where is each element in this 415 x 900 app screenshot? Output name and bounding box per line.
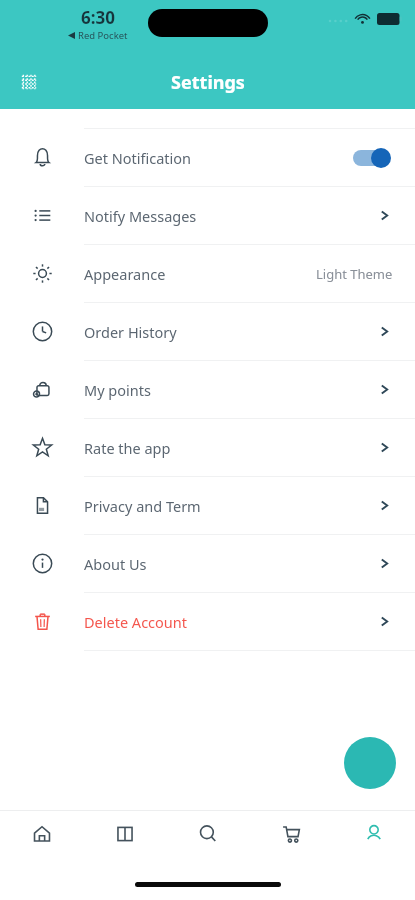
button[interactable]: Delete Account	[0, 593, 415, 651]
button[interactable]: Appearance	[0, 245, 415, 303]
staticText: Delete Account	[84, 612, 376, 632]
button[interactable]: About Us	[0, 535, 415, 593]
staticText: Order History	[84, 322, 376, 342]
other: About Us	[376, 555, 393, 572]
button[interactable]: Home	[0, 811, 83, 857]
staticText: Light Theme	[316, 265, 393, 283]
other: Rate the app	[376, 439, 393, 456]
button[interactable]: Notify Messages	[0, 187, 415, 245]
other: Order History	[376, 323, 393, 340]
other: Notify Messages	[376, 207, 393, 224]
button[interactable]: Menu	[12, 65, 46, 99]
button[interactable]: Privacy and Term	[0, 477, 415, 535]
button[interactable]: Cart	[249, 811, 332, 857]
staticText: Rate the app	[84, 438, 376, 458]
staticText: Notify Messages	[84, 206, 376, 226]
staticText: My points	[84, 380, 376, 400]
staticText: About Us	[84, 554, 376, 574]
other: My points	[376, 381, 393, 398]
button[interactable]: My points	[0, 361, 415, 419]
button[interactable]: Search	[166, 811, 249, 857]
staticText: Appearance	[84, 264, 316, 284]
other: Delete Account	[376, 613, 393, 630]
button[interactable]: Chat	[344, 737, 396, 789]
staticText: Privacy and Term	[84, 496, 376, 516]
button[interactable]: Profile	[332, 811, 415, 857]
button[interactable]: Toggle notifications	[351, 147, 393, 169]
button[interactable]: Order History	[0, 303, 415, 361]
button[interactable]: Get Notification	[0, 129, 415, 187]
other: Privacy and Term	[376, 497, 393, 514]
staticText: Get Notification	[84, 148, 351, 168]
button[interactable]: Rate the app	[0, 419, 415, 477]
staticText: Red Pocket	[78, 29, 128, 42]
button[interactable]: Catalog	[83, 811, 166, 857]
staticText: Settings	[171, 70, 245, 95]
staticText: 6:30	[81, 6, 115, 29]
